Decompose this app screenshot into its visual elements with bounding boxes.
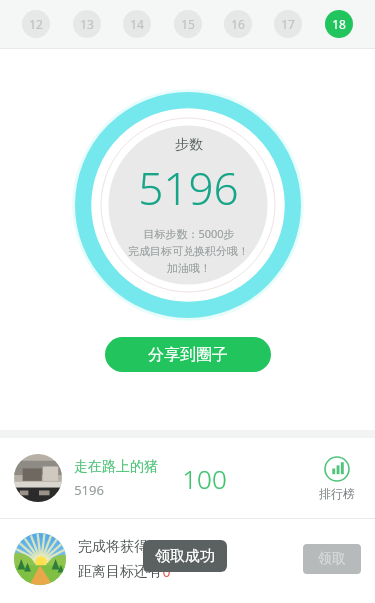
staticText: 完成将获得 xyxy=(78,538,148,556)
button[interactable]: 排行榜 xyxy=(313,454,361,503)
button[interactable]: 16 xyxy=(224,10,252,38)
button[interactable]: 分享到圈子 xyxy=(105,337,271,372)
button[interactable]: 走在路上的猪 xyxy=(0,438,375,518)
staticText: 加油哦！ xyxy=(167,261,211,275)
staticText: 14 xyxy=(130,16,144,32)
staticText: 100 xyxy=(182,461,227,496)
button[interactable]: 14 xyxy=(123,10,151,38)
button[interactable]: 领取 xyxy=(303,544,361,574)
staticText: 13 xyxy=(80,16,94,32)
staticText: 走在路上的猪 xyxy=(74,458,158,476)
staticText: 步数 xyxy=(175,136,203,154)
button[interactable]: 12 xyxy=(22,10,50,38)
staticText: 完成目标可兑换积分哦！ xyxy=(128,244,249,258)
staticText: 16 xyxy=(231,16,245,32)
staticText: 领取成功 xyxy=(155,547,215,566)
staticText: 12 xyxy=(29,16,43,32)
button[interactable]: 18 xyxy=(325,10,353,38)
staticText: 目标步数：5000步 xyxy=(143,226,235,241)
staticText: 18 xyxy=(332,16,346,32)
staticText: 奖励30积分 xyxy=(148,537,221,556)
staticText: 17 xyxy=(281,16,295,32)
staticText: 15 xyxy=(181,16,195,32)
staticText: 排行榜 xyxy=(319,486,355,501)
staticText: 距离目标还有 xyxy=(78,563,162,581)
button[interactable]: 17 xyxy=(274,10,302,38)
button[interactable]: 完成将获得 xyxy=(0,519,375,599)
button[interactable]: 15 xyxy=(174,10,202,38)
staticText: 0 xyxy=(162,562,171,581)
staticText: 5196 xyxy=(138,158,239,218)
staticText: 领取 xyxy=(318,550,346,568)
staticText: 分享到圈子 xyxy=(148,345,228,365)
button[interactable]: 13 xyxy=(73,10,101,38)
staticText: 5196 xyxy=(74,481,104,499)
